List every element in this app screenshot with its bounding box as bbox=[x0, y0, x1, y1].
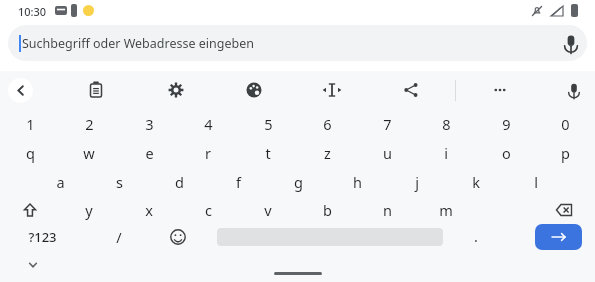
button[interactable]: Backspace bbox=[540, 195, 588, 225]
button[interactable]: q bbox=[2, 139, 58, 167]
staticText: 1 bbox=[26, 114, 35, 134]
staticText: n bbox=[383, 200, 392, 220]
button[interactable]: 8 bbox=[418, 110, 474, 138]
button[interactable]: Clipboard bbox=[72, 75, 120, 105]
button[interactable]: 0 bbox=[537, 110, 593, 138]
button[interactable]: 6 bbox=[299, 110, 355, 138]
button[interactable]: w bbox=[61, 139, 117, 167]
staticText: 8 bbox=[442, 114, 451, 134]
button[interactable]: l bbox=[508, 168, 564, 196]
staticText: k bbox=[472, 172, 480, 192]
button[interactable]: / bbox=[91, 223, 147, 251]
staticText: d bbox=[175, 172, 184, 192]
staticText: x bbox=[145, 200, 153, 220]
button[interactable]: t bbox=[240, 139, 296, 167]
button[interactable]: f bbox=[210, 168, 266, 196]
staticText: m bbox=[439, 200, 453, 220]
staticText: . bbox=[474, 226, 478, 246]
staticText: w bbox=[83, 143, 95, 163]
staticText: b bbox=[323, 200, 332, 220]
button[interactable]: x bbox=[121, 196, 177, 224]
staticText: 4 bbox=[204, 114, 213, 134]
button[interactable]: j bbox=[389, 168, 445, 196]
staticText: 3 bbox=[145, 114, 154, 134]
button[interactable]: a bbox=[32, 168, 88, 196]
button[interactable]: e bbox=[121, 139, 177, 167]
button[interactable]: u bbox=[359, 139, 415, 167]
button[interactable]: . bbox=[448, 222, 504, 250]
button[interactable]: n bbox=[359, 196, 415, 224]
staticText: Suchbegriff oder Webadresse eingeben bbox=[22, 35, 254, 52]
button[interactable]: s bbox=[91, 168, 147, 196]
button[interactable]: 7 bbox=[359, 110, 415, 138]
staticText: c bbox=[205, 200, 212, 220]
staticText: / bbox=[116, 227, 122, 247]
button[interactable]: k bbox=[448, 168, 504, 196]
staticText: i bbox=[444, 143, 448, 163]
staticText: 9 bbox=[502, 114, 511, 134]
button[interactable]: Hide keyboard bbox=[16, 253, 50, 277]
button[interactable]: 5 bbox=[240, 110, 296, 138]
staticText: q bbox=[26, 143, 35, 163]
staticText: a bbox=[56, 172, 65, 192]
button[interactable]: d bbox=[151, 168, 207, 196]
button[interactable]: c bbox=[180, 196, 236, 224]
button[interactable]: 3 bbox=[121, 110, 177, 138]
staticText: u bbox=[383, 143, 392, 163]
button[interactable]: Emoji bbox=[154, 222, 202, 252]
button[interactable]: o bbox=[478, 139, 534, 167]
staticText: 2 bbox=[85, 114, 94, 134]
button[interactable]: ?123 bbox=[14, 223, 70, 251]
staticText: 10:30 bbox=[18, 4, 47, 19]
button[interactable]: h bbox=[329, 168, 385, 196]
staticText: t bbox=[265, 143, 271, 163]
button[interactable]: 9 bbox=[478, 110, 534, 138]
button[interactable]: m bbox=[418, 196, 474, 224]
button[interactable]: Suchbegriff oder Webadresse eingeben bbox=[8, 25, 587, 61]
staticText: l bbox=[534, 172, 538, 192]
button[interactable]: y bbox=[61, 196, 117, 224]
staticText: v bbox=[264, 200, 272, 220]
staticText: p bbox=[561, 143, 570, 163]
button[interactable]: Back bbox=[8, 78, 33, 103]
staticText: h bbox=[353, 172, 362, 192]
button[interactable]: b bbox=[299, 196, 355, 224]
staticText: s bbox=[116, 172, 123, 192]
button[interactable]: i bbox=[418, 139, 474, 167]
staticText: 5 bbox=[264, 114, 273, 134]
staticText: g bbox=[294, 172, 303, 192]
button[interactable]: 1 bbox=[2, 110, 58, 138]
staticText: f bbox=[236, 172, 241, 192]
staticText: r bbox=[205, 143, 211, 163]
staticText: 7 bbox=[383, 114, 392, 134]
staticText: z bbox=[324, 143, 331, 163]
staticText: ?123 bbox=[28, 228, 57, 246]
staticText: 0 bbox=[561, 114, 570, 134]
button[interactable]: g bbox=[270, 168, 326, 196]
staticText: 6 bbox=[323, 114, 332, 134]
button[interactable]: Text editing bbox=[308, 75, 356, 105]
button[interactable]: 2 bbox=[61, 110, 117, 138]
button[interactable]: Settings bbox=[152, 75, 200, 105]
staticText: y bbox=[85, 200, 93, 220]
button[interactable]: Voice input bbox=[550, 75, 595, 105]
staticText: j bbox=[415, 172, 419, 192]
button[interactable]: 4 bbox=[180, 110, 236, 138]
button[interactable]: r bbox=[180, 139, 236, 167]
button[interactable]: Voice search bbox=[557, 29, 585, 57]
button[interactable]: z bbox=[299, 139, 355, 167]
button[interactable]: p bbox=[537, 139, 593, 167]
button[interactable]: Theme bbox=[230, 75, 278, 105]
button[interactable]: Shift bbox=[6, 195, 54, 225]
staticText: e bbox=[145, 143, 154, 163]
button[interactable]: Enter bbox=[535, 224, 582, 250]
button[interactable]: v bbox=[240, 196, 296, 224]
button[interactable]: More options bbox=[476, 75, 524, 105]
button[interactable]: Share bbox=[387, 75, 435, 105]
staticText: o bbox=[502, 143, 511, 163]
